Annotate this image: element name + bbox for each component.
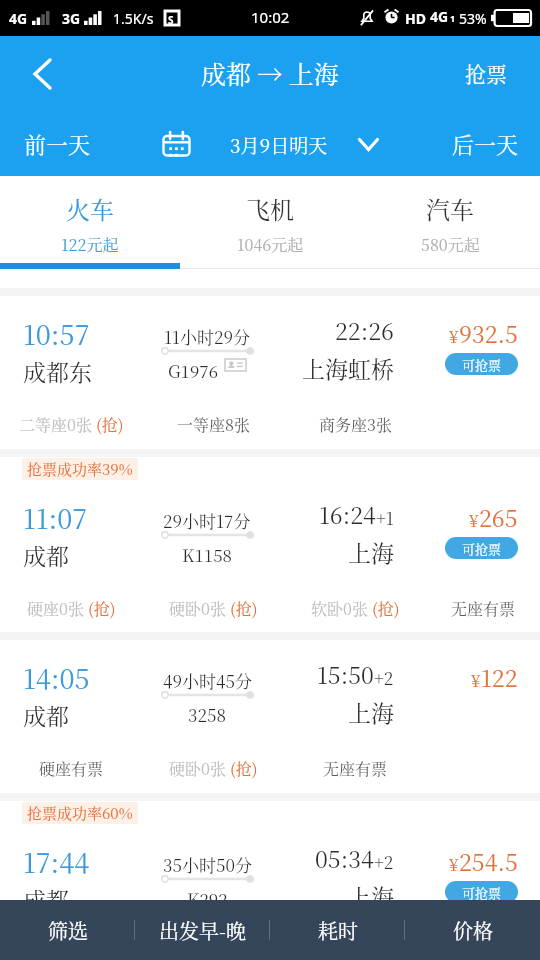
staticText: (抢): [88, 597, 116, 620]
staticText: 122元起: [61, 233, 119, 256]
staticText: 抢票成功率60%: [27, 802, 133, 824]
button[interactable]: 可抢票: [445, 537, 518, 559]
button[interactable]: 后一天: [428, 114, 540, 174]
button[interactable]: 耗时: [270, 900, 405, 960]
staticText: 10:02: [251, 7, 290, 27]
staticText: 上海: [348, 696, 394, 729]
staticText: K1158: [182, 542, 232, 566]
staticText: 成都 → 上海: [201, 55, 339, 91]
staticText: 35小时50分: [163, 852, 252, 876]
staticText: +1: [376, 505, 394, 529]
staticText: 3G: [62, 9, 81, 28]
staticText: 3月9日明天: [230, 131, 328, 158]
staticText: K292: [187, 886, 228, 910]
staticText: 火车: [66, 191, 114, 225]
staticText: 580元起: [421, 233, 480, 256]
button[interactable]: 价格: [405, 900, 540, 960]
staticText: 前一天: [24, 128, 91, 160]
button[interactable]: 火车: [0, 176, 180, 288]
staticText: 05:34: [315, 842, 374, 875]
staticText: +2: [374, 849, 394, 873]
staticText: 成都: [23, 539, 69, 572]
staticText: ¥: [471, 667, 481, 691]
staticText: 4G: [430, 7, 449, 26]
button[interactable]: 抢票成功率39%: [0, 457, 540, 632]
staticText: 无座有票: [451, 597, 516, 620]
staticText: 汽车: [426, 191, 474, 225]
staticText: 筛选: [48, 916, 88, 945]
staticText: 上海虹桥: [302, 352, 394, 385]
staticText: (抢): [230, 757, 258, 780]
staticText: 15:50: [317, 658, 374, 691]
staticText: 17:44: [23, 842, 90, 881]
staticText: 1: [450, 12, 456, 24]
staticText: 硬卧0张: [169, 757, 226, 780]
staticText: 11小时29分: [164, 324, 251, 348]
staticText: 软卧0张: [311, 597, 368, 620]
staticText: 商务座3张: [319, 413, 392, 436]
staticText: ¥: [449, 323, 459, 347]
staticText: 成都: [23, 883, 69, 916]
staticText: 硬座0张: [27, 597, 84, 620]
staticText: 265: [479, 501, 518, 534]
button[interactable]: 汽车: [360, 176, 540, 288]
staticText: 可抢票: [462, 355, 502, 374]
button[interactable]: 10:57: [0, 296, 540, 449]
staticText: 后一天: [452, 128, 519, 160]
staticText: 14:05: [23, 658, 90, 697]
button[interactable]: Pick date: [162, 114, 379, 174]
staticText: 16:24: [319, 498, 376, 531]
staticText: 53%: [459, 9, 487, 28]
staticText: 无座有票: [323, 757, 388, 780]
staticText: 可抢票: [462, 883, 502, 902]
staticText: 4G: [9, 9, 28, 28]
other: Pick date: [162, 132, 191, 157]
staticText: 耗时: [318, 916, 358, 945]
staticText: (抢): [230, 597, 258, 620]
staticText: 22:26: [335, 314, 394, 347]
button[interactable]: 抢票: [443, 40, 540, 102]
staticText: 3258: [188, 702, 226, 726]
staticText: 932.5: [459, 317, 518, 350]
staticText: HD: [405, 9, 426, 28]
staticText: 1.5K/s: [113, 9, 154, 28]
staticText: ¥: [469, 507, 479, 531]
staticText: 抢票: [465, 58, 507, 88]
button[interactable]: 筛选: [0, 900, 135, 960]
staticText: 飞机: [246, 191, 294, 225]
staticText: 成都东: [23, 355, 92, 388]
staticText: 二等座0张: [19, 413, 92, 436]
staticText: +2: [374, 665, 394, 689]
button[interactable]: 14:05: [0, 640, 540, 793]
staticText: G1976: [168, 358, 218, 382]
staticText: 10:57: [23, 314, 90, 353]
staticText: 抢票成功率39%: [27, 458, 133, 480]
staticText: 254.5: [459, 845, 518, 878]
staticText: 上海: [348, 880, 394, 913]
staticText: 上海: [348, 536, 394, 569]
button[interactable]: Back: [0, 40, 62, 102]
staticText: 价格: [453, 916, 493, 945]
staticText: 出发早-晚: [159, 916, 246, 945]
staticText: (抢): [372, 597, 400, 620]
staticText: 122: [481, 661, 518, 694]
staticText: 11:07: [23, 498, 88, 537]
button[interactable]: 可抢票: [445, 881, 518, 903]
staticText: (抢): [96, 413, 124, 436]
staticText: 可抢票: [462, 539, 502, 558]
staticText: S: [168, 13, 174, 27]
staticText: 硬卧0张: [169, 597, 226, 620]
staticText: 1046元起: [237, 233, 304, 256]
staticText: 29小时17分: [163, 508, 251, 532]
button[interactable]: 抢票成功率60%: [0, 801, 540, 960]
staticText: 49小时45分: [163, 668, 252, 692]
staticText: 硬座有票: [39, 757, 104, 780]
staticText: 成都: [23, 699, 69, 732]
button[interactable]: 出发早-晚: [135, 900, 270, 960]
staticText: 一等座8张: [177, 413, 250, 436]
staticText: ¥: [449, 851, 459, 875]
button[interactable]: 飞机: [180, 176, 360, 288]
button[interactable]: 前一天: [0, 114, 115, 174]
button[interactable]: 可抢票: [445, 353, 518, 375]
